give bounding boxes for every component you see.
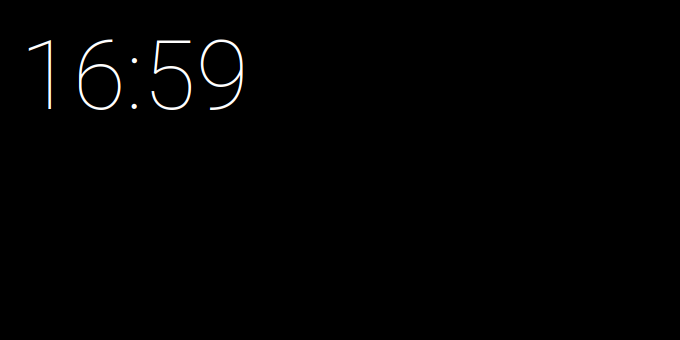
staticText: 16:59 [20, 20, 249, 132]
